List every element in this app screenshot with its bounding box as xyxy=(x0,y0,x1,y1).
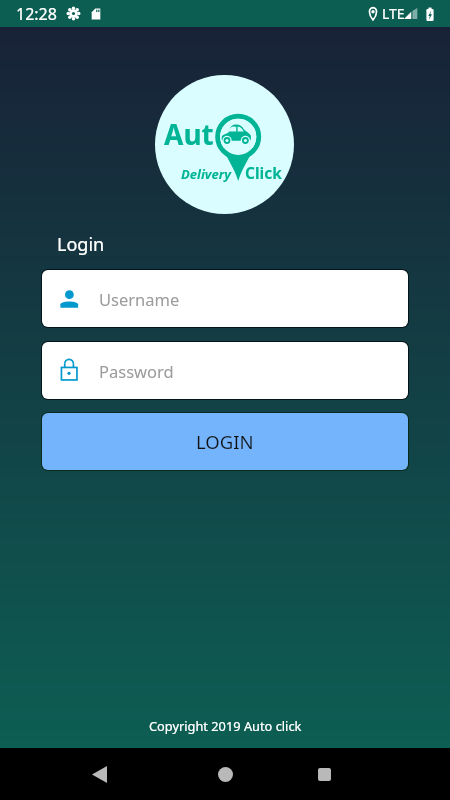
staticText: Delivery xyxy=(181,165,231,183)
button[interactable]: Password xyxy=(41,341,409,400)
staticText: Username xyxy=(99,288,180,310)
staticText: Click xyxy=(245,162,282,183)
staticText: Login xyxy=(57,232,105,257)
button[interactable]: LOGIN xyxy=(41,412,409,471)
staticText: Password xyxy=(99,360,174,382)
button[interactable]: Back xyxy=(75,750,123,798)
staticText: LTE xyxy=(382,4,405,23)
staticText: Copyright 2019 Auto click xyxy=(149,717,302,734)
staticText: Aut xyxy=(164,115,214,153)
button[interactable]: Username xyxy=(41,269,409,328)
button[interactable]: Home xyxy=(201,750,249,798)
button[interactable]: Recents xyxy=(300,750,348,798)
staticText: 12:28 xyxy=(16,3,57,25)
staticText: LOGIN xyxy=(196,429,254,454)
